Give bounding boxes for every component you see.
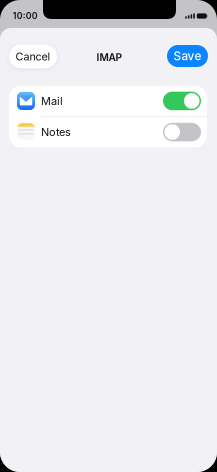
staticText: Cancel xyxy=(15,50,50,63)
button[interactable]: Save xyxy=(167,45,208,67)
staticText: Mail xyxy=(41,94,63,107)
staticText: IMAP xyxy=(96,51,122,64)
staticText: 10:00 xyxy=(13,10,38,21)
button[interactable]: Cancel xyxy=(9,45,57,68)
staticText: Notes xyxy=(41,125,71,139)
staticText: Save xyxy=(173,49,201,63)
button[interactable]: Mail xyxy=(9,86,207,116)
button[interactable]: Notes xyxy=(9,117,207,147)
